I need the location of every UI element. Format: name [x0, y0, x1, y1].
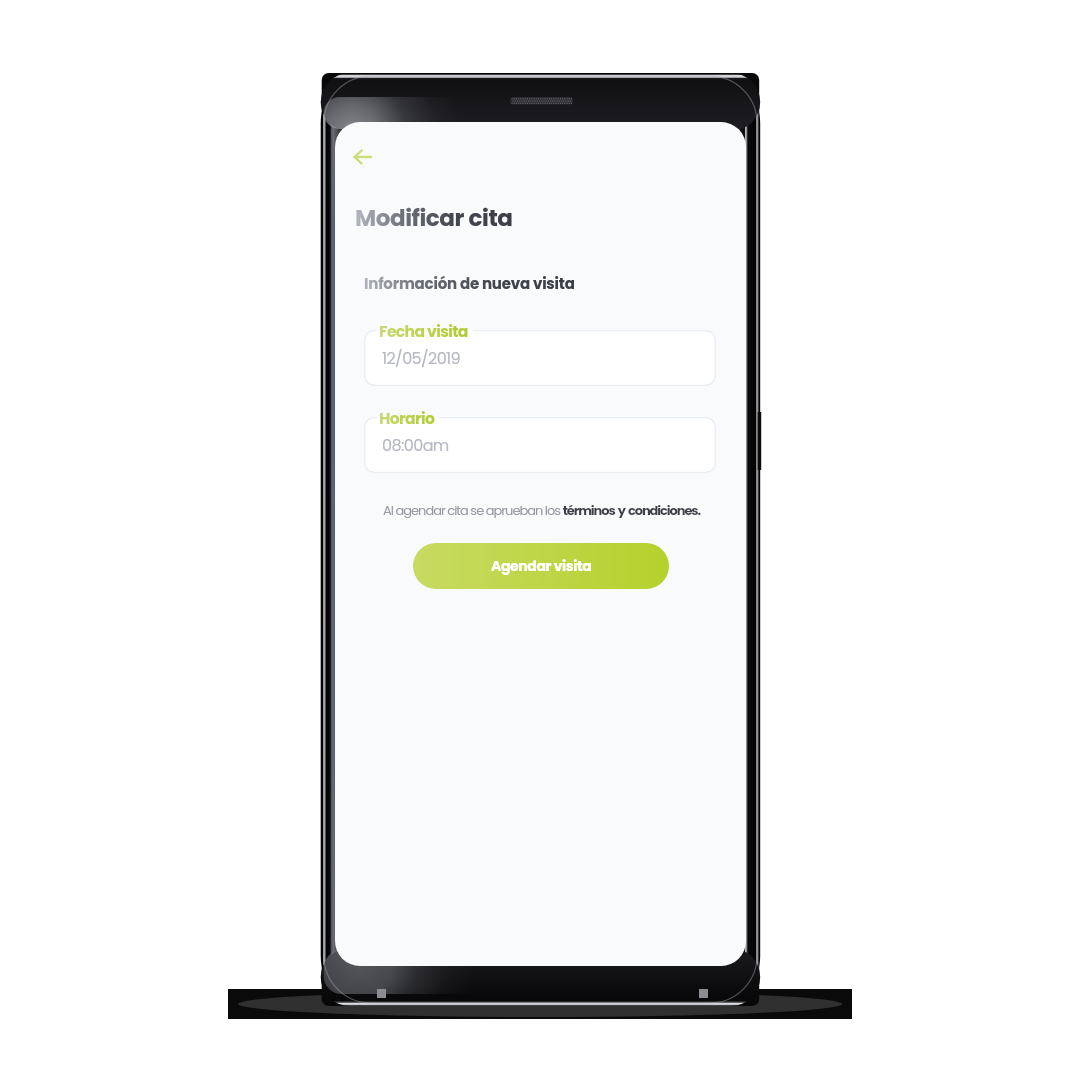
staticText: 12/05/2019 — [382, 347, 461, 369]
staticText: Al agendar cita se aprueban los términos… — [383, 501, 701, 519]
staticText: Horario — [379, 408, 435, 430]
staticText: 08:00am — [382, 434, 449, 456]
staticText: Fecha visita — [379, 321, 468, 343]
button[interactable]: 12/05/2019 — [364, 330, 716, 386]
button[interactable]: Back — [340, 135, 384, 179]
staticText: Modificar cita — [355, 202, 513, 234]
staticText: Agendar visita — [491, 556, 592, 576]
staticText: Información de nueva visita — [364, 273, 575, 294]
button[interactable]: Agendar visita — [413, 543, 669, 589]
button[interactable]: 08:00am — [364, 417, 716, 473]
